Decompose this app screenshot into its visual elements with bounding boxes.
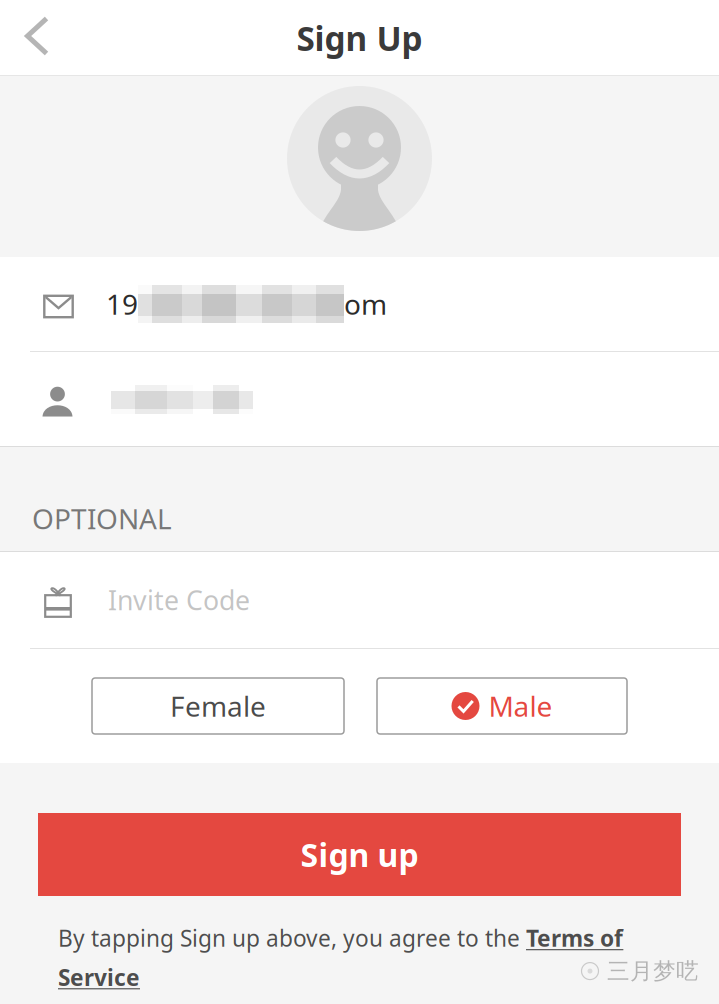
staticText: om [344,285,387,323]
button[interactable]: Female [92,678,344,734]
button[interactable]: Sign up [38,813,681,896]
staticText: Male [488,687,552,725]
button[interactable]: Male [377,678,627,734]
button[interactable]: Back [0,5,69,71]
staticText: Sign Up [296,16,422,60]
staticText: 19 [106,285,138,323]
staticText: Sign up [300,833,418,876]
staticText: OPTIONAL [32,500,172,537]
staticText: By tapping Sign up above, you agree to t… [58,923,623,992]
staticText: Invite Code [108,582,250,618]
button[interactable]: Add profile photo [0,76,719,257]
staticText: 三月梦呓 [607,957,699,985]
staticText: Female [170,687,266,725]
